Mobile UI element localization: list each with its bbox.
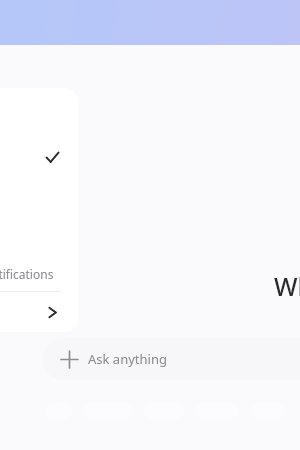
other: Selected	[42, 147, 62, 167]
other: Open	[42, 302, 62, 322]
button[interactable]: Open	[0, 292, 78, 332]
staticText: Wh	[274, 269, 300, 303]
button[interactable]: Add attachment	[56, 346, 82, 372]
staticText: Notifications	[0, 266, 54, 282]
button[interactable]: Selected	[0, 136, 78, 178]
button[interactable]: Add attachment	[42, 338, 300, 380]
staticText: Ask anything	[88, 350, 167, 368]
